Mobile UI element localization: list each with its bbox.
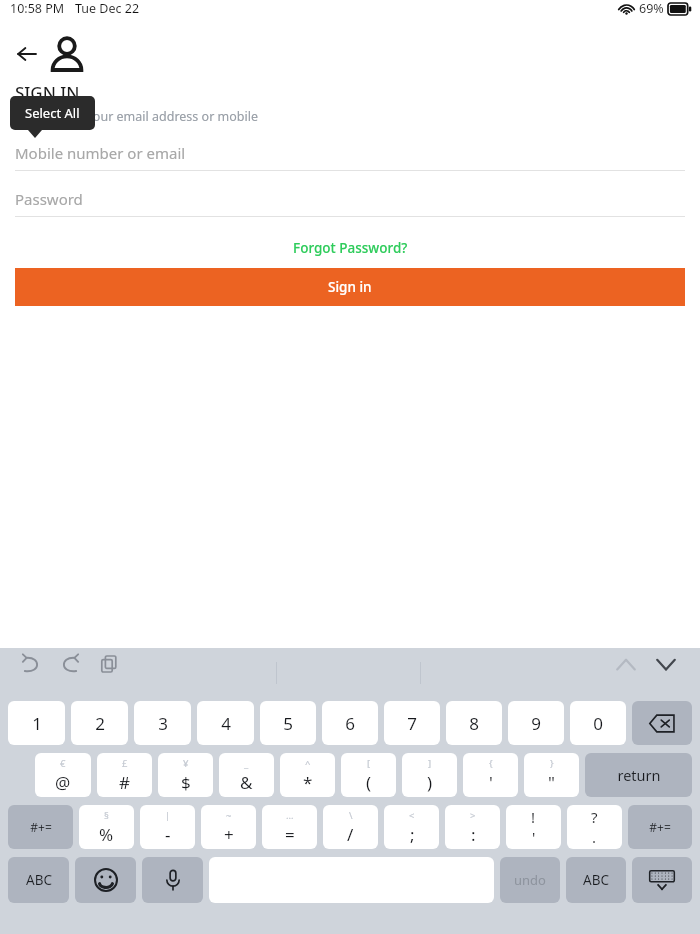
button[interactable]: 8: [446, 701, 502, 745]
button[interactable]: ]: [402, 753, 457, 797]
staticText: £: [122, 757, 128, 770]
staticText: ABC: [583, 871, 609, 889]
button[interactable]: 4: [197, 701, 254, 745]
button[interactable]: 0: [570, 701, 626, 745]
staticText: [: [367, 757, 371, 770]
button[interactable]: return: [585, 753, 692, 797]
staticText: ¥: [183, 757, 189, 770]
button[interactable]: >: [445, 805, 500, 849]
button[interactable]: Hide keyboard: [632, 857, 692, 903]
staticText: 7: [407, 712, 417, 735]
button[interactable]: …: [262, 805, 317, 849]
button[interactable]: ABC: [566, 857, 626, 903]
button[interactable]: €: [35, 753, 91, 797]
button[interactable]: [: [341, 753, 396, 797]
staticText: >: [470, 809, 476, 822]
button[interactable]: Previous field: [610, 648, 642, 680]
button[interactable]: 3: [134, 701, 191, 745]
button[interactable]: Forgot Password?: [283, 233, 418, 263]
button[interactable]: ?: [567, 805, 622, 849]
staticText: $: [181, 771, 191, 794]
button[interactable]: \: [323, 805, 378, 849]
staticText: !: [531, 807, 536, 827]
button[interactable]: Mobile number or email: [15, 143, 685, 171]
button[interactable]: Emoji: [75, 857, 136, 903]
button[interactable]: Select All: [10, 96, 95, 130]
button[interactable]: Redo: [55, 649, 85, 679]
button[interactable]: Next field: [650, 648, 682, 680]
staticText: ': [489, 771, 493, 794]
staticText: Sign in: [328, 278, 372, 296]
button[interactable]: |: [140, 805, 195, 849]
staticText: #+=: [649, 819, 671, 835]
staticText: return: [617, 765, 661, 785]
staticText: @: [55, 771, 71, 794]
button[interactable]: Back: [12, 39, 42, 69]
button[interactable]: §: [79, 805, 134, 849]
staticText: 9: [531, 712, 541, 735]
staticText: /: [347, 823, 354, 846]
staticText: ?: [591, 807, 598, 827]
button[interactable]: 9: [508, 701, 564, 745]
button[interactable]: Backspace: [632, 701, 692, 745]
staticText: 10:58 PM: [10, 0, 65, 17]
button[interactable]: Undo: [16, 649, 46, 679]
button[interactable]: 1: [8, 701, 65, 745]
staticText: ": [548, 771, 555, 794]
staticText: 1: [32, 712, 42, 735]
staticText: §: [104, 809, 109, 822]
staticText: +: [224, 823, 234, 846]
staticText: 8: [469, 712, 479, 735]
button[interactable]: 2: [71, 701, 128, 745]
button[interactable]: _: [219, 753, 274, 797]
staticText: 6: [345, 712, 355, 735]
button[interactable]: <: [384, 805, 439, 849]
staticText: _: [244, 757, 249, 770]
staticText: €: [60, 757, 66, 770]
staticText: *: [303, 771, 313, 794]
button[interactable]: ^: [280, 753, 335, 797]
button[interactable]: #+=: [628, 805, 692, 849]
staticText: 3: [158, 712, 168, 735]
staticText: …: [286, 809, 294, 822]
button[interactable]: 6: [322, 701, 378, 745]
button[interactable]: }: [524, 753, 579, 797]
staticText: Sign in with your email address or mobil…: [15, 108, 259, 125]
staticText: 4: [221, 712, 231, 735]
button[interactable]: Password: [15, 189, 685, 217]
button[interactable]: undo: [500, 857, 560, 903]
button[interactable]: Sign in: [15, 268, 685, 306]
staticText: ': [532, 827, 536, 847]
staticText: Mobile number or email: [15, 143, 186, 163]
staticText: %: [99, 823, 114, 846]
staticText: ^: [305, 757, 311, 770]
staticText: <: [409, 809, 415, 822]
button[interactable]: 5: [260, 701, 316, 745]
button[interactable]: {: [463, 753, 518, 797]
staticText: 2: [95, 712, 105, 735]
staticText: (: [366, 771, 372, 794]
button[interactable]: !: [506, 805, 561, 849]
button[interactable]: 7: [384, 701, 440, 745]
button[interactable]: ABC: [8, 857, 69, 903]
staticText: ): [427, 771, 433, 794]
button[interactable]: Account: [44, 31, 90, 77]
staticText: #+=: [30, 819, 52, 835]
button[interactable]: ~: [201, 805, 256, 849]
staticText: ABC: [26, 871, 52, 889]
staticText: #: [119, 771, 130, 794]
staticText: |: [165, 809, 171, 822]
staticText: undo: [514, 871, 546, 889]
staticText: ;: [410, 823, 415, 846]
button[interactable]: Paste: [94, 649, 124, 679]
staticText: &: [240, 771, 253, 794]
staticText: Tue Dec 22: [75, 0, 140, 17]
button[interactable]: ¥: [158, 753, 213, 797]
button[interactable]: #+=: [8, 805, 73, 849]
button[interactable]: £: [97, 753, 152, 797]
staticText: 5: [283, 712, 293, 735]
staticText: -: [165, 823, 171, 846]
staticText: ~: [226, 809, 232, 822]
button[interactable]: Voice input: [142, 857, 203, 903]
